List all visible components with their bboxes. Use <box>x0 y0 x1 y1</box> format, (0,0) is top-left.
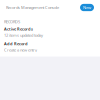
staticText: 12 items updated today <box>4 33 43 38</box>
staticText: Records Management Console <box>6 5 59 10</box>
button[interactable]: Active Records <box>4 26 96 38</box>
staticText: Active Records <box>4 26 33 32</box>
staticText: New <box>83 5 91 10</box>
staticText: RECORDS <box>4 19 20 24</box>
staticText: Create a new entry <box>4 47 37 52</box>
staticText: Add Record <box>4 41 28 46</box>
button[interactable]: Add Record <box>4 41 96 52</box>
button[interactable]: New <box>80 4 94 11</box>
